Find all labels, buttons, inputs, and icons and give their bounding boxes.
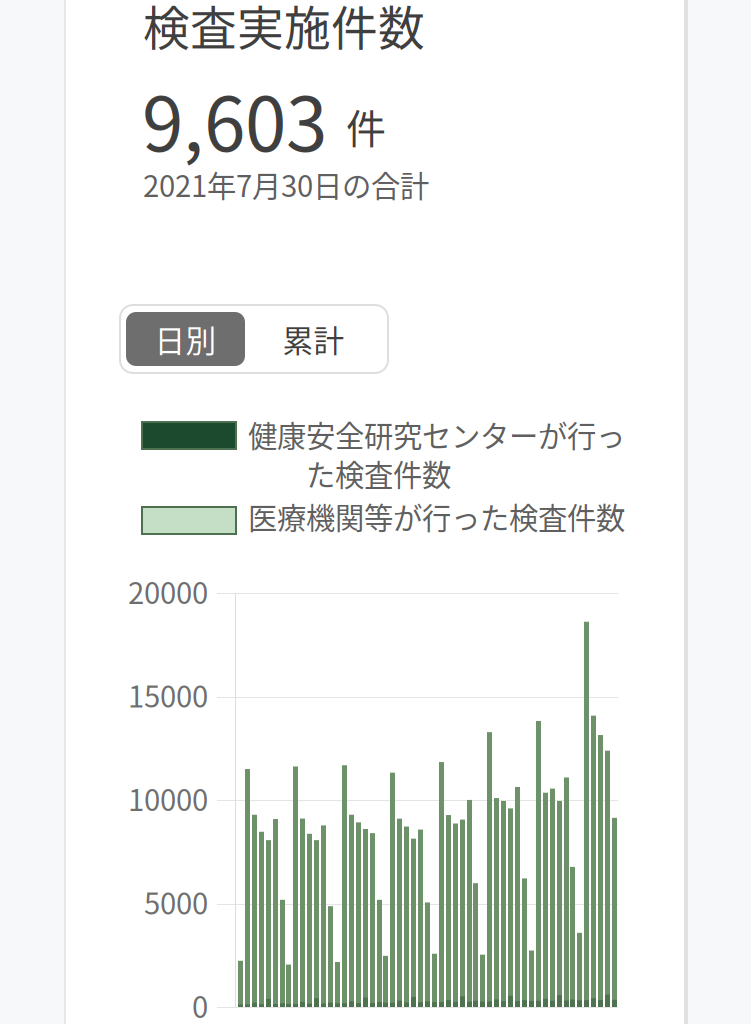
staticText: 健康安全研究センターが行っ xyxy=(248,413,625,455)
button[interactable]: 日別 xyxy=(126,312,245,366)
staticText: 検査実施件数 xyxy=(143,0,425,59)
staticText: 件 xyxy=(346,97,386,155)
staticText: 5000 xyxy=(144,880,208,923)
staticText: 20000 xyxy=(128,570,208,612)
staticText: 累計 xyxy=(282,317,344,361)
staticText: 2021年7月30日の合計 xyxy=(143,163,429,205)
staticText: 9,603 xyxy=(142,65,327,173)
staticText: 0 xyxy=(192,984,208,1024)
staticText: 10000 xyxy=(128,777,208,819)
button[interactable]: 累計 xyxy=(245,312,382,366)
staticText: 医療機関等が行った検査件数 xyxy=(248,495,625,537)
staticText: 15000 xyxy=(128,673,208,716)
staticText: た検査件数 xyxy=(306,452,451,494)
staticText: 日別 xyxy=(154,317,216,361)
